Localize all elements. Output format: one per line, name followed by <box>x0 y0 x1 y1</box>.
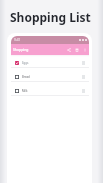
button[interactable]: Milk <box>11 86 89 96</box>
button[interactable]: Eggs <box>11 58 89 68</box>
button[interactable]: Share <box>66 47 71 52</box>
button[interactable]: More options <box>82 47 87 52</box>
staticText: Eggs <box>22 61 29 65</box>
button[interactable]: Delete list <box>74 47 79 52</box>
staticText: Bread <box>22 75 30 79</box>
staticText: 9:41 <box>14 38 21 42</box>
staticText: Milk <box>22 89 28 93</box>
staticText: Shopping List <box>10 9 91 25</box>
button[interactable]: Bread <box>11 72 89 82</box>
staticText: Shopping <box>13 47 29 52</box>
